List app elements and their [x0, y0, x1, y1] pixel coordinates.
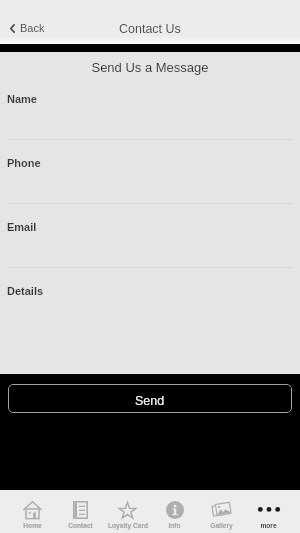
staticText: Loyalty Card: [108, 522, 148, 529]
other: Loyalty Card: [118, 501, 137, 519]
staticText: Send: [135, 394, 165, 408]
button[interactable]: More: [245, 490, 292, 529]
staticText: Details: [7, 285, 44, 297]
other: Info: [166, 501, 184, 519]
other: Gallery: [212, 501, 231, 517]
staticText: Send Us a Message: [0, 60, 300, 75]
staticText: Info: [168, 522, 181, 529]
button[interactable]: Back: [6, 19, 49, 37]
staticText: Gallery: [210, 522, 233, 529]
button[interactable]: Info: [151, 490, 198, 529]
staticText: Back: [20, 22, 45, 34]
staticText: Home: [23, 522, 42, 529]
button[interactable]: Gallery: [198, 490, 245, 529]
staticText: more: [260, 522, 277, 529]
staticText: Contact Us: [119, 22, 181, 36]
button[interactable]: Name: [0, 75, 300, 139]
button[interactable]: Loyalty Card: [104, 490, 151, 529]
staticText: Name: [7, 93, 37, 105]
other: Contact: [73, 501, 88, 519]
other: More: [259, 501, 279, 519]
button[interactable]: Home: [8, 490, 56, 529]
staticText: Email: [7, 221, 37, 233]
button[interactable]: Details: [0, 267, 300, 374]
button[interactable]: Send: [8, 384, 292, 413]
button[interactable]: Phone: [0, 139, 300, 203]
button[interactable]: Contact: [56, 490, 104, 529]
staticText: Contact: [68, 522, 93, 529]
other: Home: [23, 501, 42, 519]
button[interactable]: Email: [0, 203, 300, 267]
staticText: Phone: [7, 157, 41, 169]
